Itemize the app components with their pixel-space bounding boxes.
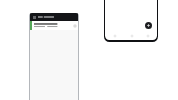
button[interactable]: Create new <box>145 22 152 29</box>
button[interactable]: Item options <box>73 24 76 27</box>
button[interactable]: Home <box>108 31 121 40</box>
button[interactable]: Search <box>125 31 138 40</box>
button[interactable]: Profile <box>141 31 154 40</box>
button[interactable]: Item options <box>30 21 78 30</box>
button[interactable]: Open navigation menu <box>32 15 36 19</box>
